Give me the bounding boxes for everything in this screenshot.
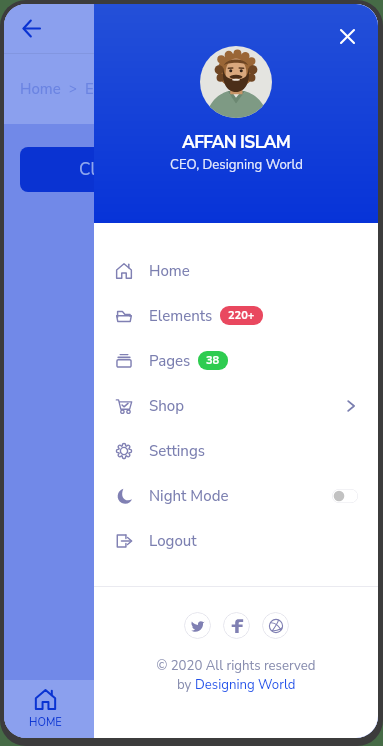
button[interactable]: Facebook [223,612,250,639]
staticText: Click [79,158,117,181]
button[interactable]: Home [94,248,378,293]
staticText: > [69,80,77,98]
staticText: Pages [149,351,191,371]
staticText: 220+ [228,308,255,323]
staticText: Settings [149,441,205,461]
staticText: Night Mode [149,486,229,506]
staticText: HOME [29,715,62,730]
staticText: 38 [206,353,220,368]
staticText: Home [149,261,190,281]
button[interactable]: HOME [4,680,86,738]
staticText: Shop [149,396,185,416]
button[interactable]: Pages [94,338,378,383]
button[interactable]: Night Mode [94,473,378,518]
button[interactable]: Close [327,16,367,56]
button[interactable]: Twitter [184,612,211,639]
button[interactable]: Night Mode toggle [332,489,358,503]
button[interactable]: Dribbble [262,612,289,639]
staticText: Designing World [195,676,296,694]
button[interactable]: Logout [94,518,378,563]
button[interactable]: Back [11,8,51,48]
staticText: CEO, Designing World [170,156,303,174]
button[interactable]: Elements [94,293,378,338]
staticText: Elements [149,306,213,326]
button[interactable]: Click [20,147,176,192]
staticText: Logout [149,531,197,551]
button[interactable]: Settings [94,428,378,473]
button[interactable]: Shop [94,383,378,428]
staticText: Elements [85,79,149,99]
staticText: AFFAN ISLAM [182,131,291,155]
staticText: Home [20,79,61,99]
staticText: © 2020 All rights reserved [94,657,378,675]
staticText: by [177,676,195,694]
